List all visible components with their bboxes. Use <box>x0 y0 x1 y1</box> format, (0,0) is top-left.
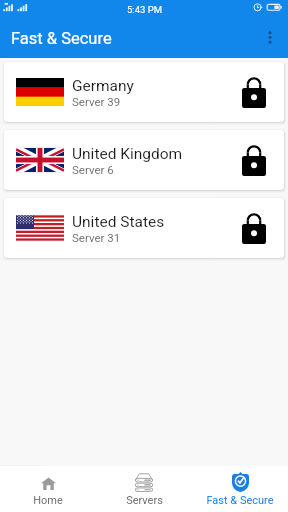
staticText: Server 39 <box>72 95 121 108</box>
staticText: Germany <box>72 77 134 95</box>
button[interactable]: Servers <box>96 466 192 512</box>
button[interactable]: Locked <box>238 144 270 176</box>
button[interactable]: United States <box>4 198 284 258</box>
button[interactable]: Home <box>0 466 96 512</box>
staticText: Server 31 <box>72 231 121 244</box>
staticText: Fast & Secure <box>206 494 274 507</box>
staticText: United Kingdom <box>72 145 183 163</box>
button[interactable]: Germany <box>4 62 284 122</box>
staticText: Server 6 <box>72 163 114 176</box>
button[interactable]: More options <box>256 24 284 52</box>
staticText: United States <box>72 213 165 231</box>
button[interactable]: Fast & Secure <box>192 466 288 512</box>
staticText: 5:43 PM <box>127 4 162 15</box>
staticText: Servers <box>126 494 163 507</box>
button[interactable]: Locked <box>238 212 270 244</box>
button[interactable]: United Kingdom <box>4 130 284 190</box>
staticText: Fast & Secure <box>11 29 112 48</box>
staticText: Home <box>33 494 63 507</box>
button[interactable]: Locked <box>238 76 270 108</box>
